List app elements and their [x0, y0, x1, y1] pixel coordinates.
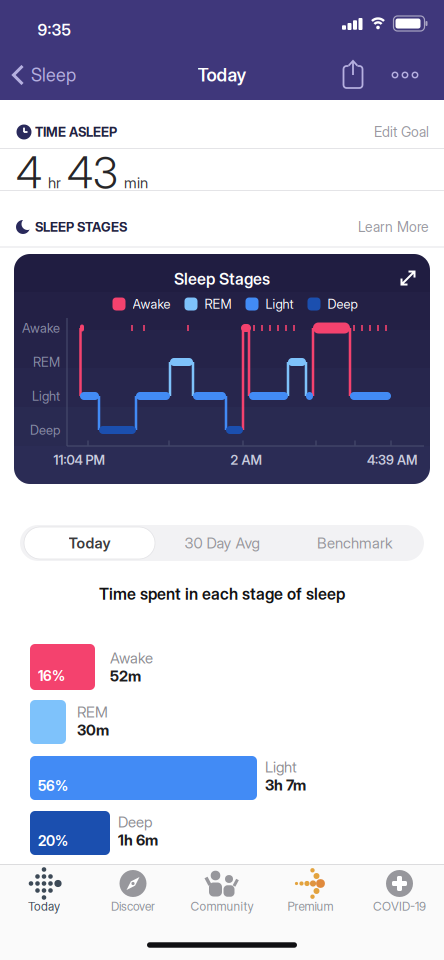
button[interactable]: More	[387, 62, 423, 88]
button[interactable]: Expand	[399, 269, 417, 287]
button[interactable]: Edit Goal	[309, 117, 429, 147]
staticText: REM	[77, 703, 108, 721]
staticText: 1h 6m	[118, 831, 158, 849]
staticText: Light	[265, 758, 297, 776]
staticText: Sleep	[31, 64, 76, 86]
staticText: 11:04 PM	[53, 452, 104, 468]
staticText: Today	[28, 899, 60, 914]
staticText: COVID-19	[373, 899, 426, 914]
staticText: 20%	[38, 833, 68, 849]
staticText: Today	[68, 534, 110, 552]
staticText: Today	[197, 64, 246, 86]
staticText: Light	[265, 296, 293, 312]
staticText: Awake	[22, 320, 60, 336]
staticText: REM	[204, 296, 231, 312]
button[interactable]: Community	[181, 865, 263, 919]
staticText: 4	[16, 147, 42, 198]
staticText: Premium	[287, 899, 333, 914]
button[interactable]: 30 Day Avg	[155, 525, 289, 561]
staticText: 52m	[110, 667, 141, 685]
button[interactable]: Benchmark	[288, 525, 422, 561]
button[interactable]: Sleep	[12, 58, 94, 92]
button[interactable]: COVID-19	[358, 865, 440, 919]
staticText: Awake	[110, 649, 153, 667]
staticText: TIME ASLEEP	[35, 124, 117, 140]
staticText: hr	[48, 174, 61, 191]
staticText: Edit Goal	[374, 124, 429, 140]
staticText: 3h 7m	[265, 776, 306, 794]
button[interactable]: Share	[341, 59, 365, 88]
staticText: Light	[32, 388, 60, 404]
staticText: Time spent in each stage of sleep	[99, 585, 345, 603]
staticText: Benchmark	[317, 534, 393, 552]
staticText: 43	[67, 147, 118, 198]
staticText: REM	[33, 354, 60, 370]
staticText: Discover	[111, 899, 155, 914]
button[interactable]: Today	[3, 865, 85, 919]
staticText: Sleep Stages	[174, 270, 270, 288]
staticText: 9:35	[37, 21, 70, 39]
staticText: 56%	[38, 778, 68, 794]
staticText: Awake	[132, 296, 170, 312]
staticText: 2 AM	[230, 452, 261, 468]
button[interactable]: Today	[24, 527, 155, 559]
staticText: Deep	[30, 422, 60, 438]
staticText: Community	[190, 899, 253, 914]
staticText: 30m	[77, 721, 109, 739]
staticText: min	[124, 174, 148, 191]
button[interactable]: Learn More	[309, 212, 429, 242]
staticText: 16%	[38, 668, 65, 684]
button[interactable]: Premium	[269, 865, 351, 919]
staticText: SLEEP STAGES	[35, 219, 127, 235]
staticText: Deep	[118, 813, 152, 831]
staticText: Deep	[327, 296, 357, 312]
staticText: 30 Day Avg	[184, 534, 259, 552]
staticText: 4:39 AM	[367, 452, 417, 468]
staticText: Learn More	[358, 219, 429, 235]
button[interactable]: Discover	[92, 865, 174, 919]
